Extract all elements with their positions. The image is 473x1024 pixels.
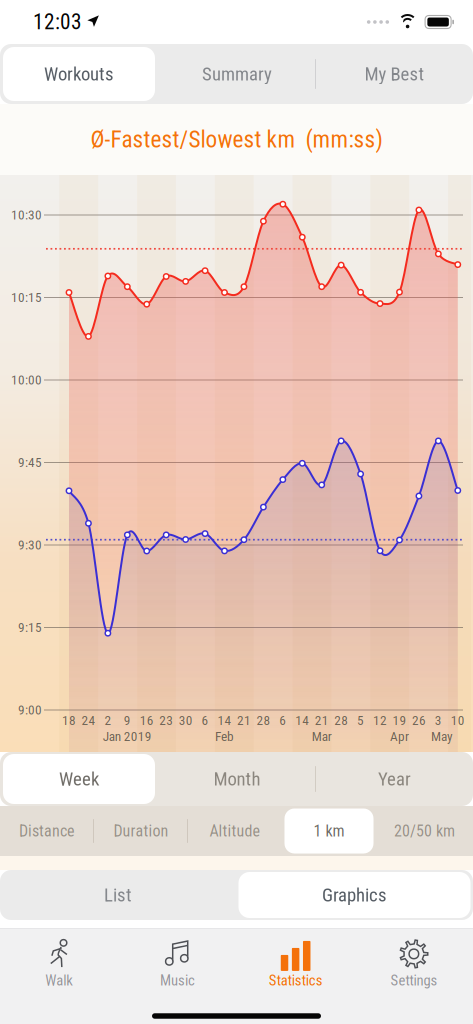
staticText: 1 km — [313, 822, 344, 840]
staticText: List — [104, 884, 132, 906]
staticText: Month — [213, 768, 260, 790]
button[interactable]: 1 km — [282, 806, 376, 856]
staticText: 9:30 — [18, 537, 42, 553]
staticText: 6 — [202, 713, 209, 728]
staticText: Altitude — [209, 822, 260, 840]
button[interactable]: My Best — [316, 44, 473, 104]
staticText: 26 — [412, 713, 426, 728]
staticText: May — [431, 729, 453, 744]
staticText: Settings — [390, 972, 437, 989]
button[interactable]: Statistics — [236, 931, 355, 989]
staticText: 20/50 km — [394, 822, 455, 840]
button[interactable]: Workouts — [0, 44, 158, 104]
staticText: 9:45 — [18, 455, 42, 470]
staticText: 28 — [334, 713, 348, 728]
staticText: 6 — [279, 713, 286, 728]
staticText: Workouts — [44, 63, 114, 85]
staticText: Jan 2019 — [103, 729, 152, 744]
button[interactable]: Month — [158, 752, 316, 806]
button[interactable]: Altitude — [188, 806, 282, 856]
staticText: 3 — [435, 713, 442, 728]
staticText: 10:30 — [11, 207, 42, 223]
staticText: My Best — [364, 63, 424, 85]
staticText: 14 — [217, 713, 231, 728]
staticText: 30 — [179, 713, 193, 728]
staticText: Walk — [45, 972, 73, 989]
button[interactable]: 20/50 km — [376, 806, 473, 856]
staticText: Apr — [390, 729, 409, 744]
staticText: 9:15 — [18, 620, 42, 635]
staticText: 9:00 — [18, 702, 42, 718]
staticText: 10:00 — [11, 372, 42, 388]
staticText: 10 — [451, 713, 465, 728]
staticText: 21 — [237, 713, 251, 728]
staticText: 9 — [124, 713, 131, 728]
staticText: 28 — [256, 713, 270, 728]
button[interactable]: Walk — [0, 931, 118, 989]
staticText: 12 — [373, 713, 387, 728]
staticText: Feb — [215, 729, 234, 744]
button[interactable]: List — [0, 870, 236, 920]
staticText: Week — [59, 768, 99, 790]
button[interactable]: Settings — [355, 931, 473, 989]
staticText: Mar — [312, 729, 332, 744]
staticText: 10:15 — [11, 290, 42, 305]
staticText: Ø-Fastest/Slowest km (mm:ss) — [90, 126, 382, 153]
staticText: 2 — [104, 713, 111, 728]
button[interactable]: Duration — [94, 806, 188, 856]
staticText: 23 — [159, 713, 173, 728]
staticText: 5 — [357, 713, 364, 728]
button[interactable]: Year — [316, 752, 473, 806]
staticText: Statistics — [269, 972, 323, 989]
staticText: 21 — [315, 713, 329, 728]
staticText: 18 — [62, 713, 76, 728]
staticText: Duration — [113, 822, 168, 840]
staticText: Music — [160, 972, 195, 989]
button[interactable]: Distance — [0, 806, 94, 856]
button[interactable]: Music — [118, 931, 236, 989]
staticText: Summary — [202, 63, 272, 85]
staticText: 14 — [295, 713, 309, 728]
staticText: Distance — [19, 822, 75, 840]
button[interactable]: Week — [0, 752, 158, 806]
staticText: 24 — [81, 713, 95, 728]
staticText: 16 — [140, 713, 154, 728]
staticText: 12:03 — [33, 9, 82, 34]
staticText: 19 — [392, 713, 406, 728]
staticText: Graphics — [322, 884, 387, 906]
staticText: Year — [378, 768, 411, 790]
button[interactable]: Summary — [158, 44, 316, 104]
button[interactable]: Graphics — [236, 870, 473, 920]
